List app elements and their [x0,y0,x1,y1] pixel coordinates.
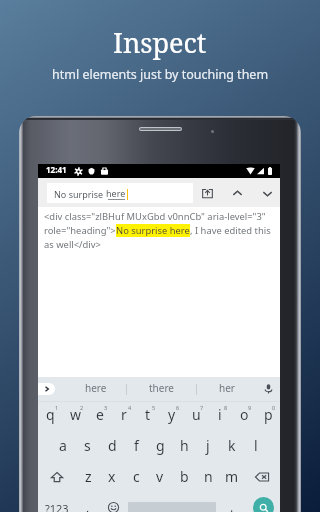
staticText: y [168,405,176,424]
staticText: there [149,381,174,395]
staticText: k [228,436,236,455]
button[interactable]: Open in browser [197,183,217,203]
button[interactable]: . [216,495,247,512]
staticText: 2 [80,404,84,411]
staticText: e [96,405,104,424]
button[interactable]: 3 [88,402,112,433]
button[interactable]: 8 [208,402,232,433]
staticText: 4 [128,404,132,411]
button[interactable]: s [75,433,100,464]
button[interactable]: Shift [38,464,76,495]
staticText: t [145,405,151,424]
staticText: r [121,405,127,424]
staticText: z [85,467,92,486]
staticText: a [59,436,67,455]
button[interactable]: z [76,464,100,495]
staticText: , I have edited this [190,224,271,237]
button[interactable]: , [76,495,99,512]
button[interactable]: g [148,433,172,464]
button[interactable]: More suggestions [38,383,55,395]
staticText: 1 [55,404,59,411]
button[interactable]: there [127,377,196,401]
button[interactable]: Previous [227,183,247,203]
staticText: b [180,467,189,486]
staticText: as well</div> [44,238,101,251]
button[interactable]: a [50,433,75,464]
staticText: 0 [272,404,276,411]
staticText: <div class="zlBHuf MUxGbd v0nnCb" aria-l… [44,210,266,223]
button[interactable]: 1 [38,402,63,433]
button[interactable]: h [172,433,196,464]
button[interactable]: b [172,464,196,495]
staticText: w [70,405,82,424]
button[interactable]: m [220,464,244,495]
button[interactable]: here [55,377,126,401]
button[interactable]: 9 [232,402,256,433]
staticText: html elements just by touching them [52,66,269,83]
staticText: o [240,405,249,424]
staticText: No surprise [54,188,106,200]
button[interactable]: Voice input [257,377,280,401]
staticText: , [86,499,90,512]
button[interactable]: No surprise [47,183,193,203]
staticText: Inspect [113,24,207,61]
button[interactable]: 6 [160,402,184,433]
staticText: here [85,381,107,395]
staticText: d [108,436,117,455]
staticText: n [204,467,213,486]
staticText: s [84,436,91,455]
staticText: 8 [224,404,228,411]
button[interactable]: x [100,464,124,495]
staticText: p [264,405,273,424]
button[interactable]: c [124,464,148,495]
staticText: here [106,187,126,199]
button[interactable]: ?123 [38,495,76,512]
button[interactable]: k [220,433,244,464]
button[interactable]: Next [257,183,277,203]
staticText: No surprise here [116,224,190,237]
button[interactable]: n [196,464,220,495]
staticText: 3 [104,404,108,411]
button[interactable]: 0 [256,402,280,433]
staticText: her [219,381,235,395]
staticText: 9 [248,404,252,411]
staticText: f [134,436,139,455]
staticText: m [225,467,239,486]
staticText: l [254,436,258,455]
staticText: 12:41 [46,164,67,175]
button[interactable]: d [100,433,124,464]
button[interactable]: 2 [63,402,88,433]
staticText: h [180,436,189,455]
staticText: i [218,405,222,424]
button[interactable]: her [197,377,257,401]
button[interactable]: j [196,433,220,464]
button[interactable]: 7 [184,402,208,433]
staticText: q [46,405,55,424]
staticText: 6 [176,404,180,411]
button[interactable]: 4 [112,402,136,433]
button[interactable]: Search [247,495,280,512]
staticText: 5 [152,404,156,411]
button[interactable]: Emoji [99,495,128,512]
button[interactable]: v [148,464,172,495]
staticText: role="heading"> [44,224,116,237]
button[interactable]: l [244,433,268,464]
staticText: 7 [200,404,204,411]
staticText: . [230,499,234,512]
staticText: x [108,467,116,486]
staticText: c [133,467,140,486]
staticText: ?123 [45,501,69,512]
staticText: v [156,467,164,486]
staticText: u [192,405,201,424]
button[interactable]: 5 [136,402,160,433]
staticText: g [156,436,165,455]
button[interactable]: f [124,433,148,464]
staticText: j [206,436,210,455]
button[interactable]: Backspace [244,464,280,495]
